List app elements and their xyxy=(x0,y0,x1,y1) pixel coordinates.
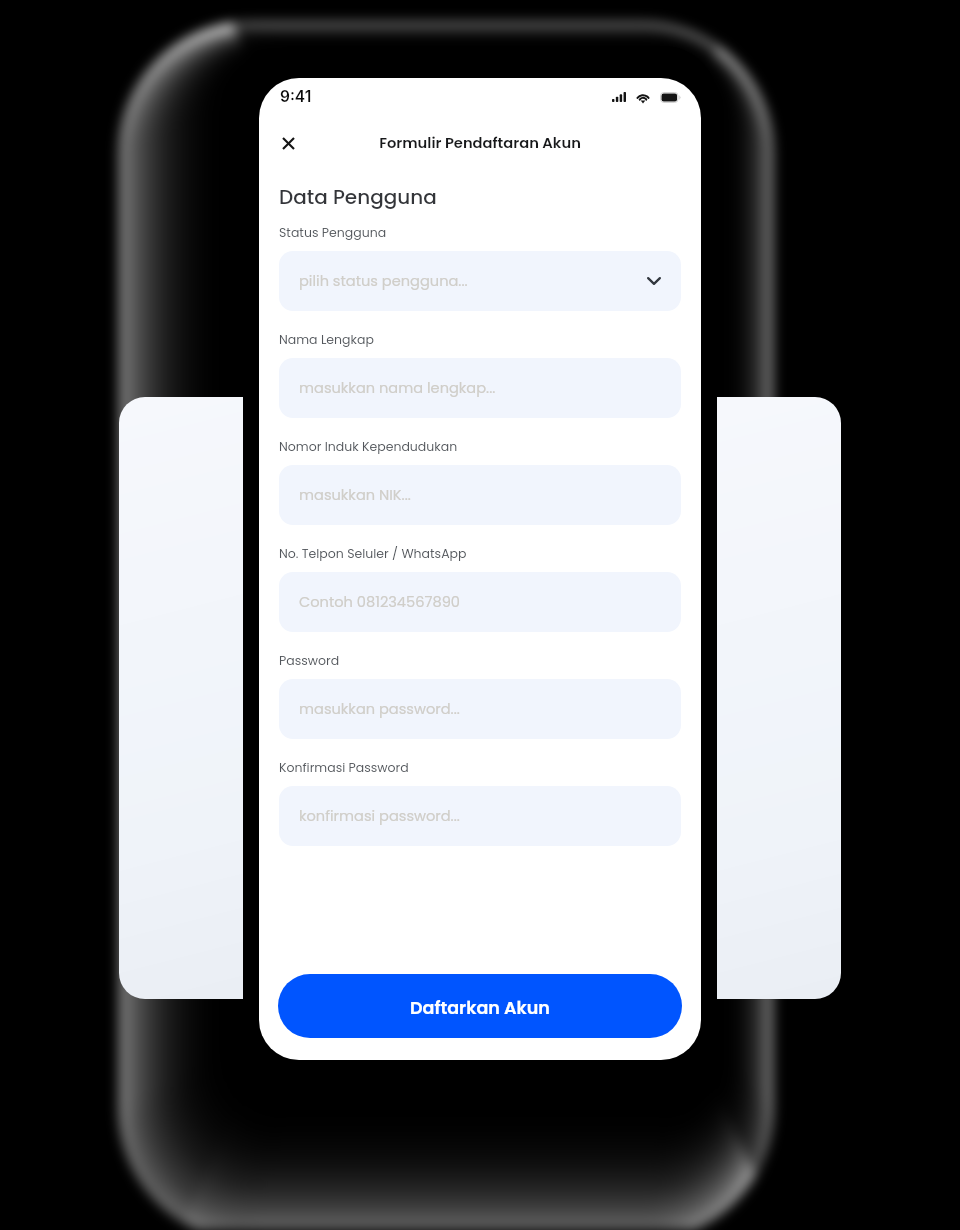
staticText: Data Pengguna xyxy=(279,183,437,211)
staticText: No. Telpon Seluler / WhatsApp xyxy=(279,545,467,562)
staticText: masukkan NIK... xyxy=(299,485,411,505)
button[interactable]: Contoh 081234567890 xyxy=(279,572,681,632)
staticText: Contoh 081234567890 xyxy=(299,592,461,612)
staticText: masukkan password... xyxy=(299,699,460,719)
button[interactable]: masukkan NIK... xyxy=(279,465,681,525)
staticText: 9:41 xyxy=(280,87,312,106)
staticText: Konfirmasi Password xyxy=(279,759,409,776)
button[interactable]: masukkan nama lengkap... xyxy=(279,358,681,418)
button[interactable]: masukkan password... xyxy=(279,679,681,739)
staticText: Formulir Pendaftaran Akun xyxy=(379,133,581,154)
button[interactable]: Daftarkan Akun xyxy=(278,974,682,1038)
staticText: pilih status pengguna... xyxy=(299,271,468,291)
staticText: masukkan nama lengkap... xyxy=(299,378,496,398)
staticText: Nama Lengkap xyxy=(279,331,374,348)
button[interactable]: konfirmasi password... xyxy=(279,786,681,846)
button[interactable]: pilih status pengguna... xyxy=(279,251,681,311)
staticText: Password xyxy=(279,652,340,669)
staticText: Daftarkan Akun xyxy=(410,996,550,1021)
staticText: konfirmasi password... xyxy=(299,806,460,826)
staticText: Status Pengguna xyxy=(279,224,387,241)
button[interactable]: Close xyxy=(268,123,309,164)
staticText: Nomor Induk Kependudukan xyxy=(279,438,458,455)
